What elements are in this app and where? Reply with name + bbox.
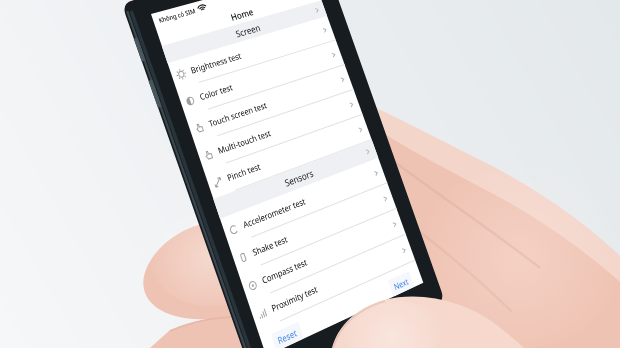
button[interactable]: Screen [162,0,327,63]
staticText: Pinch test [225,160,263,184]
staticText: Reset [276,326,299,346]
staticText: Color test [198,81,235,103]
button[interactable]: Pinch test [204,115,372,199]
button[interactable]: Proximity test [248,234,415,331]
staticText: Brightness test [189,50,243,76]
staticText: Compass test [260,256,309,287]
staticText: Không có SIM [157,6,197,25]
staticText: Multi-touch test [216,127,273,157]
staticText: Accelerometer test [241,195,308,231]
button[interactable]: Shake test [229,183,397,275]
staticText: Sensors [283,167,316,190]
button[interactable]: Color test [177,40,345,117]
staticText: Shake test [251,233,290,259]
button[interactable]: Brightness test [168,16,336,90]
button[interactable]: Multi-touch test [195,90,363,171]
button[interactable]: Reset [271,321,304,348]
button[interactable]: Accelerometer test [220,158,387,247]
button[interactable]: Next [388,271,415,297]
staticText: Next [392,275,410,292]
button[interactable]: Touch screen test [186,65,354,144]
staticText: Proximity test [270,283,319,315]
button[interactable]: Sensors [213,140,378,219]
staticText: Touch screen test [207,99,269,130]
staticText: Home [229,6,255,24]
staticText: Screen [234,21,263,40]
button[interactable]: Compass test [239,209,406,303]
